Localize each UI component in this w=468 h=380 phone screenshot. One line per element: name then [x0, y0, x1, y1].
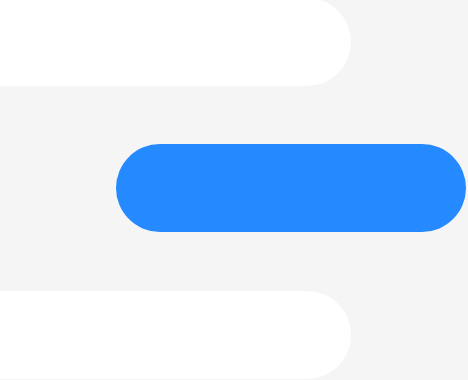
button[interactable]: Open navigation menu	[0, 0, 468, 380]
